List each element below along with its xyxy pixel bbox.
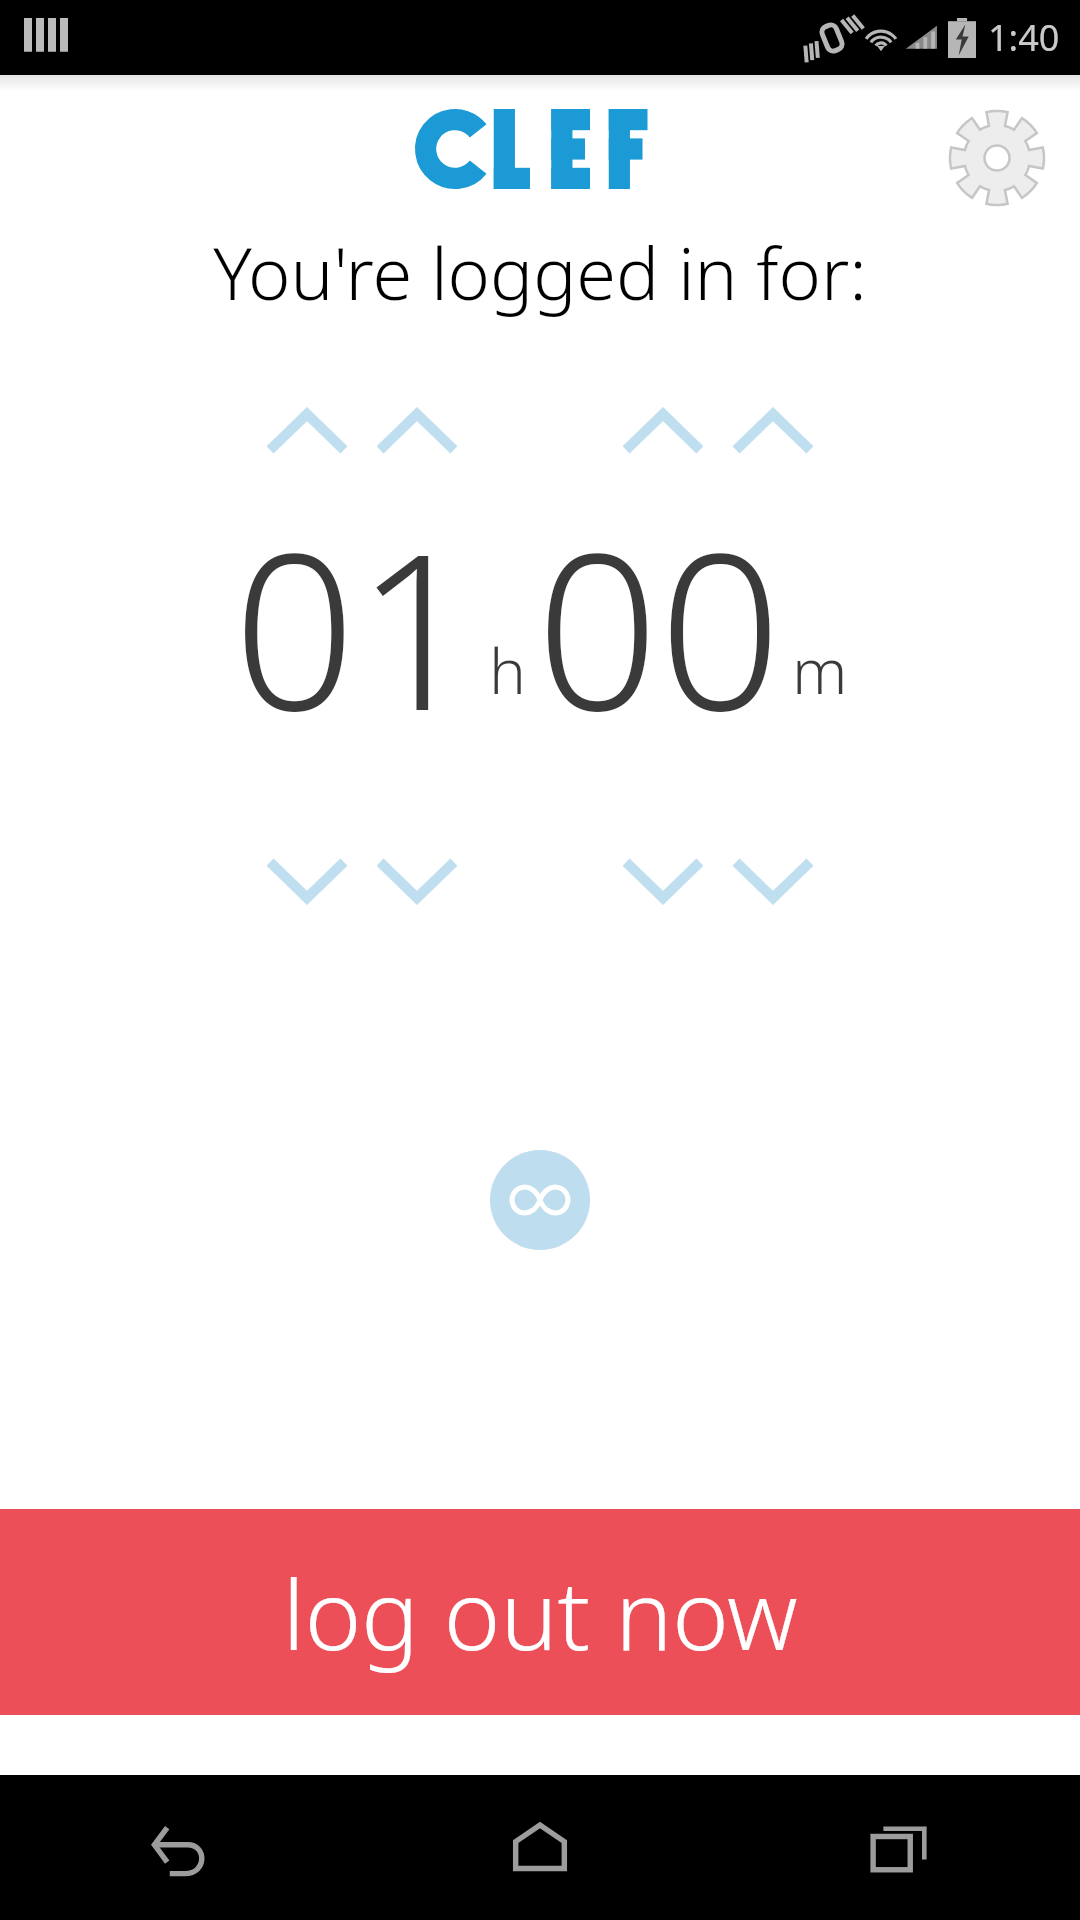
button[interactable]: Increase minutes bbox=[595, 402, 841, 462]
button[interactable]: Back bbox=[105, 1775, 255, 1920]
button[interactable]: Recent apps bbox=[825, 1775, 975, 1920]
staticText: m bbox=[792, 628, 848, 712]
button[interactable]: Increase hours bbox=[239, 402, 485, 462]
staticText: 1:40 bbox=[988, 13, 1060, 62]
staticText: 00 bbox=[536, 480, 782, 773]
button[interactable]: Decrease hours bbox=[239, 850, 485, 910]
button[interactable]: Home bbox=[465, 1775, 615, 1920]
button[interactable]: log out now bbox=[0, 1509, 1080, 1715]
button[interactable]: Decrease minutes bbox=[595, 850, 841, 910]
button[interactable]: Settings bbox=[942, 103, 1052, 213]
staticText: 01 bbox=[233, 480, 479, 773]
staticText: h bbox=[489, 628, 526, 712]
button[interactable]: Stay logged in forever bbox=[490, 1150, 590, 1250]
staticText: log out now bbox=[282, 1547, 798, 1678]
staticText: You're logged in for: bbox=[213, 223, 867, 321]
